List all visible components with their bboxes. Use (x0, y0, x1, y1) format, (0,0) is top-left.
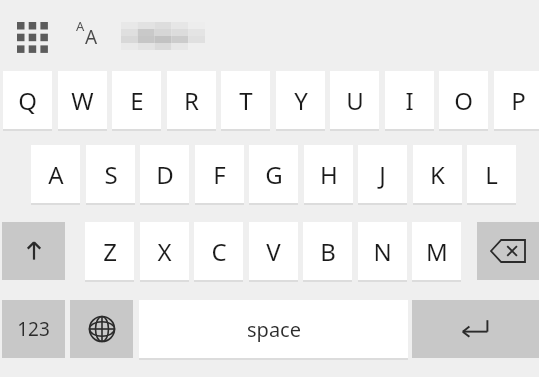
staticText: A (85, 24, 98, 50)
button[interactable]: Z (85, 222, 134, 280)
staticText: space (247, 316, 301, 343)
button[interactable]: O (439, 71, 488, 129)
button[interactable]: Shift (2, 222, 65, 280)
staticText: V (266, 235, 281, 268)
button[interactable]: V (249, 222, 298, 280)
button[interactable]: C (194, 222, 243, 280)
button[interactable]: M (412, 222, 461, 280)
staticText: A (48, 158, 64, 191)
staticText: 123 (17, 316, 50, 342)
staticText: I (405, 84, 414, 117)
staticText: R (184, 84, 199, 117)
staticText: T (239, 84, 253, 117)
button[interactable]: Text size (74, 17, 114, 51)
button[interactable]: T (221, 71, 270, 129)
button[interactable]: A (31, 145, 80, 203)
button[interactable]: K (413, 145, 462, 203)
staticText: C (211, 235, 227, 268)
staticText: M (426, 235, 448, 268)
button[interactable]: Q (3, 71, 52, 129)
staticText: O (454, 84, 473, 117)
staticText: G (265, 158, 283, 191)
button[interactable]: W (58, 71, 107, 129)
staticText: A (76, 17, 85, 35)
button[interactable]: Apps grid (14, 17, 52, 53)
button[interactable]: Y (276, 71, 325, 129)
button[interactable]: Change language (70, 300, 133, 358)
button[interactable]: G (249, 145, 298, 203)
staticText: P (511, 84, 526, 117)
staticText: L (485, 158, 498, 191)
staticText: J (379, 158, 386, 191)
button[interactable]: L (467, 145, 516, 203)
staticText: B (320, 235, 336, 268)
staticText: H (320, 158, 338, 191)
button[interactable]: Enter (412, 300, 539, 358)
button[interactable]: N (358, 222, 407, 280)
button[interactable]: F (195, 145, 244, 203)
staticText: Z (103, 235, 117, 268)
staticText: D (156, 158, 174, 191)
button[interactable]: space (139, 300, 408, 358)
staticText: K (430, 158, 445, 191)
button[interactable]: B (303, 222, 352, 280)
button[interactable]: I (385, 71, 434, 129)
button[interactable]: H (304, 145, 353, 203)
staticText: N (373, 235, 392, 268)
staticText: U (346, 84, 364, 117)
button[interactable]: 123 (2, 300, 65, 358)
button[interactable]: R (167, 71, 216, 129)
button[interactable]: P (494, 71, 539, 129)
button[interactable]: Backspace (477, 222, 539, 280)
staticText: X (157, 235, 172, 268)
button[interactable]: J (358, 145, 407, 203)
button[interactable]: U (330, 71, 379, 129)
button[interactable]: S (86, 145, 135, 203)
staticText: S (104, 158, 118, 191)
staticText: W (71, 84, 94, 117)
staticText: Y (294, 84, 308, 117)
button[interactable]: E (112, 71, 161, 129)
staticText: F (213, 158, 226, 191)
staticText: E (130, 84, 144, 117)
button[interactable]: X (140, 222, 189, 280)
button[interactable]: D (140, 145, 189, 203)
staticText: Q (18, 84, 37, 117)
